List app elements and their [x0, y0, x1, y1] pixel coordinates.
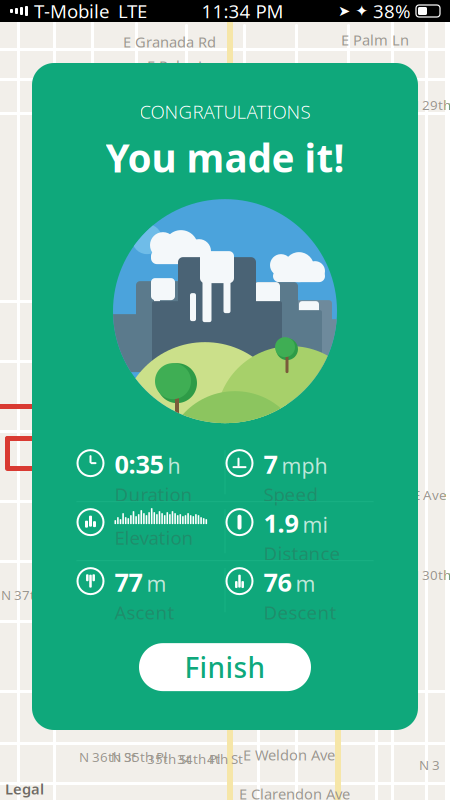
staticText: Legal [5, 779, 44, 798]
staticText: ➤ [338, 3, 350, 19]
staticText: Elevation [114, 525, 193, 550]
staticText: E Palm Ln [147, 56, 215, 75]
staticText: 0:35 [114, 447, 163, 481]
staticText: Distance [263, 541, 340, 566]
staticText: 1.9 [263, 506, 298, 540]
staticText: N 37th St [1, 586, 58, 604]
staticText: E Palm Ln [341, 30, 409, 49]
staticText: 77 [114, 565, 142, 599]
staticText: m [146, 569, 166, 598]
staticText: LTE [118, 0, 147, 23]
staticText: m [295, 569, 315, 598]
staticText: Speed [263, 482, 317, 507]
staticText: 34th Pl [177, 750, 220, 768]
staticText: N 3 [419, 756, 440, 774]
staticText: 35th St [147, 750, 191, 768]
staticText: Ascent [114, 600, 174, 625]
staticText: Finish [184, 648, 265, 686]
staticText: N 29th St [409, 96, 450, 114]
staticText: 4th St [207, 750, 243, 768]
staticText: N 30th St [409, 566, 450, 584]
staticText: mph [281, 451, 327, 480]
staticText: 11:34 PM [201, 0, 283, 23]
staticText: CONGRATULATIONS [139, 99, 310, 124]
staticText: N 36th St [79, 748, 136, 766]
staticText: E Clarendon Ave [239, 784, 350, 800]
staticText: You made it! [105, 132, 344, 183]
staticText: E Weldon Ave [243, 745, 335, 764]
staticText: T-Mobile [34, 0, 110, 23]
staticText: E Granada Rd [123, 32, 216, 51]
staticText: ✦ [355, 2, 368, 20]
staticText: Descent [263, 600, 336, 625]
staticText: 7 [263, 447, 277, 481]
staticText: mi [302, 510, 328, 539]
staticText: E Ave [413, 486, 447, 504]
staticText: Duration [114, 482, 192, 507]
staticText: 76 [263, 565, 291, 599]
staticText: h [167, 451, 180, 480]
staticText: N 35th Pl [111, 748, 167, 766]
staticText: 38% [373, 0, 411, 23]
button[interactable]: Finish [139, 643, 311, 691]
